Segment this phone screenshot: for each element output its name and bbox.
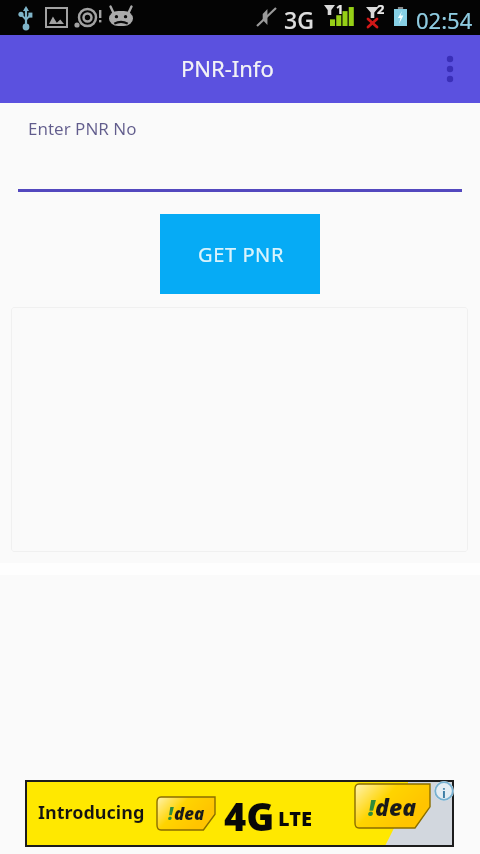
staticText: i [442, 784, 446, 802]
staticText: GET PNR [198, 241, 284, 268]
staticText: 02:54 [416, 5, 473, 35]
staticText: PNR-Info [181, 53, 274, 83]
staticText: 3G [284, 4, 314, 35]
staticText: ! [368, 791, 375, 822]
button[interactable]: Enter PNR No [0, 103, 480, 195]
button[interactable]: GET PNR [160, 214, 320, 294]
staticText: LTE [278, 805, 313, 832]
staticText: 4G [224, 790, 275, 842]
staticText: Enter PNR No [28, 117, 137, 140]
staticText: ! [168, 802, 174, 825]
button[interactable]: Advertisement [26, 781, 453, 846]
button[interactable]: More options [426, 45, 474, 93]
staticText: Introducing [38, 800, 145, 825]
staticText: 1 [336, 0, 344, 18]
staticText: 2 [377, 0, 385, 18]
staticText: dea [375, 791, 417, 822]
staticText: dea [174, 802, 205, 825]
